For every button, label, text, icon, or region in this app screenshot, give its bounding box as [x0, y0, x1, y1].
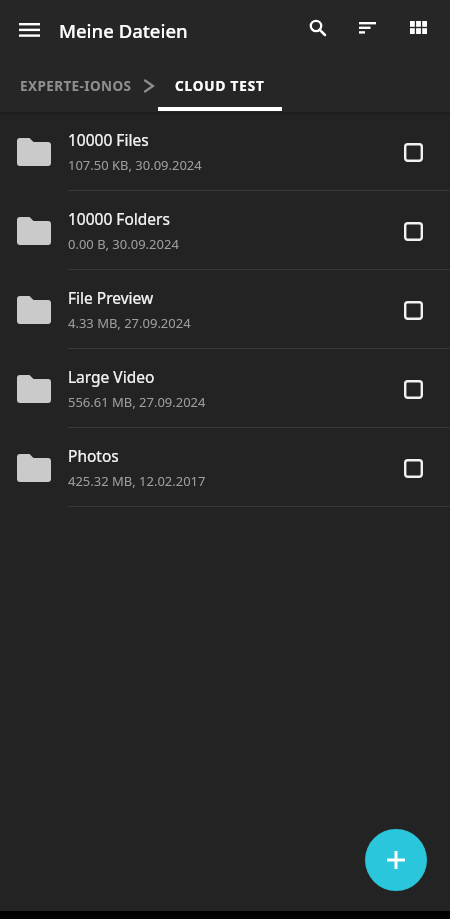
button[interactable]: File Preview: [0, 270, 450, 349]
staticText: 425.32 MB, 12.02.2017: [68, 472, 206, 490]
staticText: CLOUD TEST: [175, 77, 265, 95]
button[interactable]: [344, 4, 392, 52]
button[interactable]: [389, 207, 437, 255]
button[interactable]: 10000 Files: [0, 112, 450, 191]
button[interactable]: Photos: [0, 428, 450, 507]
button[interactable]: [394, 4, 442, 52]
button[interactable]: [5, 5, 53, 53]
button[interactable]: CLOUD TEST: [158, 56, 282, 112]
staticText: Meine Dateien: [59, 18, 188, 43]
button[interactable]: 10000 Folders: [0, 191, 450, 270]
staticText: 10000 Files: [68, 129, 149, 150]
staticText: File Preview: [68, 287, 154, 308]
button[interactable]: [389, 128, 437, 176]
staticText: EXPERTE-IONOS: [20, 77, 132, 95]
button[interactable]: [389, 286, 437, 334]
button[interactable]: Large Video: [0, 349, 450, 428]
button[interactable]: [389, 365, 437, 413]
button[interactable]: [294, 4, 342, 52]
staticText: 107.50 KB, 30.09.2024: [68, 156, 202, 174]
staticText: 556.61 MB, 27.09.2024: [68, 393, 206, 411]
button[interactable]: [389, 444, 437, 492]
staticText: 10000 Folders: [68, 208, 170, 229]
button[interactable]: EXPERTE-IONOS: [20, 77, 132, 95]
staticText: 4.33 MB, 27.09.2024: [68, 314, 191, 332]
staticText: Photos: [68, 445, 119, 466]
staticText: 0.00 B, 30.09.2024: [68, 235, 179, 253]
staticText: Large Video: [68, 366, 155, 387]
button[interactable]: [365, 829, 427, 891]
